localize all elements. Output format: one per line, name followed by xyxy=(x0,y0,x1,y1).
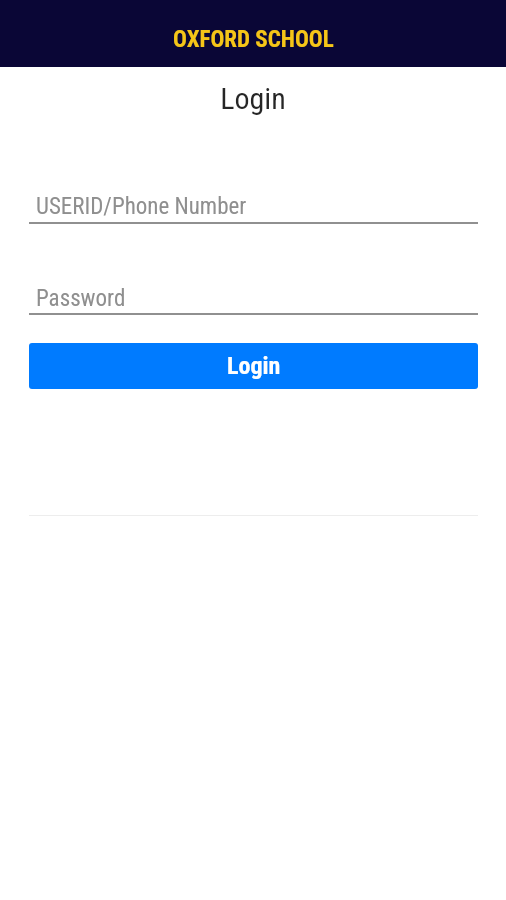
button[interactable]: Login xyxy=(29,343,478,389)
staticText: USERID/Phone Number xyxy=(36,193,247,220)
button[interactable]: USERID/Phone Number xyxy=(29,185,478,224)
staticText: Password xyxy=(36,285,126,312)
button[interactable]: Password xyxy=(29,277,478,315)
staticText: Login xyxy=(227,352,281,380)
staticText: OXFORD SCHOOL xyxy=(173,26,334,53)
staticText: Login xyxy=(0,81,506,116)
